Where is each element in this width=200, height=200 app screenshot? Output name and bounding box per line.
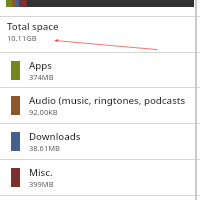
- staticText: 38.61MB: [29, 143, 60, 153]
- button[interactable]: Apps: [0, 52, 200, 87]
- button[interactable]: Misc.: [0, 159, 200, 195]
- staticText: 374MB: [29, 72, 54, 82]
- staticText: Total space: [7, 20, 59, 33]
- staticText: 92.00KB: [29, 107, 58, 117]
- staticText: Downloads: [29, 130, 81, 143]
- staticText: 10.11GB: [7, 33, 37, 43]
- staticText: Audio (music, ringtones, podcasts: [29, 94, 186, 107]
- staticText: 399MB: [29, 179, 54, 189]
- button[interactable]: Audio (music, ringtones, podcasts: [0, 87, 200, 123]
- staticText: Apps: [29, 59, 53, 72]
- staticText: Misc.: [29, 166, 53, 179]
- button[interactable]: Downloads: [0, 123, 200, 159]
